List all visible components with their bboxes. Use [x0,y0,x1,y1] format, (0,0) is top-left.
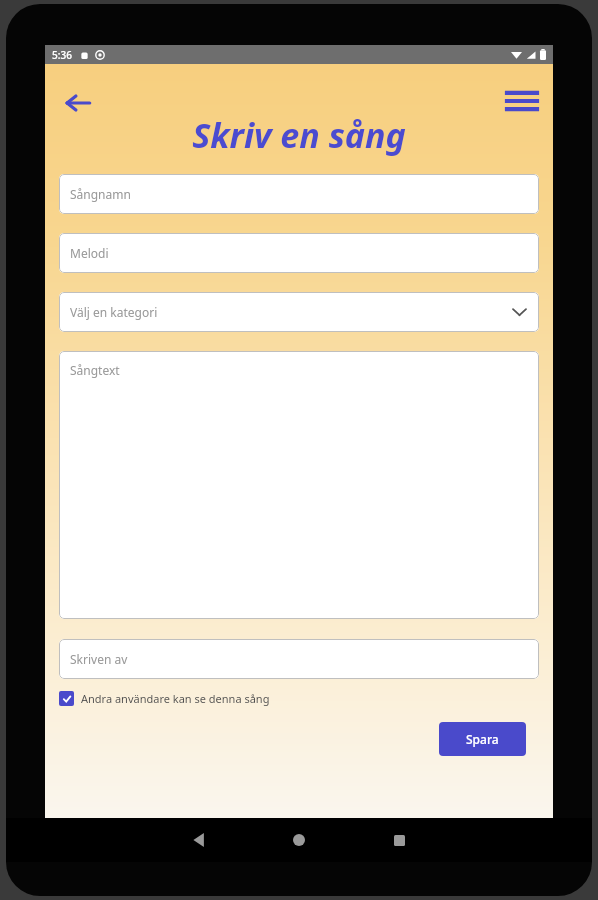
button[interactable]: Melodi [59,233,539,273]
staticText: Sångnamn [70,186,131,202]
button[interactable]: Välj en kategori [59,292,539,332]
staticText: Skriv en sång [45,112,553,158]
staticText: Andra användare kan se denna sång [81,691,270,706]
staticText: Spara [466,731,499,747]
staticText: Välj en kategori [70,304,158,320]
button[interactable]: Andra användare kan se denna sång [59,691,539,706]
button[interactable]: Spara [439,722,526,756]
button[interactable]: Recent apps [379,820,419,860]
button[interactable]: Home [279,820,319,860]
staticText: Sångtext [70,362,120,378]
button[interactable]: Back [55,80,101,126]
button[interactable]: Sångnamn [59,174,539,214]
button[interactable]: Menu [499,78,545,124]
button[interactable]: Sångtext [59,351,539,619]
button[interactable]: Skriven av [59,639,539,679]
button[interactable]: Back [179,820,219,860]
staticText: 5:36 [52,48,72,62]
staticText: Skriven av [70,651,128,667]
staticText: Melodi [70,245,109,261]
